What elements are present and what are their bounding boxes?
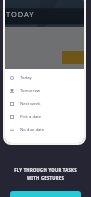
staticText: FLY THROUGH YOUR TASKS WITH GESTURES <box>0 167 91 181</box>
button[interactable]: Pick a date <box>5 110 84 123</box>
staticText: Pick a date <box>20 114 42 120</box>
button[interactable]: Tomorrow <box>5 84 84 97</box>
staticText: No due date <box>20 127 45 133</box>
staticText: TODAY <box>6 9 35 19</box>
button[interactable]: Today <box>5 71 84 84</box>
staticText: Next week <box>20 101 41 107</box>
staticText: Tomorrow <box>20 88 41 94</box>
button[interactable]: Next week <box>5 97 84 110</box>
staticText: Today <box>20 75 32 81</box>
button[interactable]: No due date <box>5 123 84 136</box>
button[interactable] <box>10 191 81 197</box>
